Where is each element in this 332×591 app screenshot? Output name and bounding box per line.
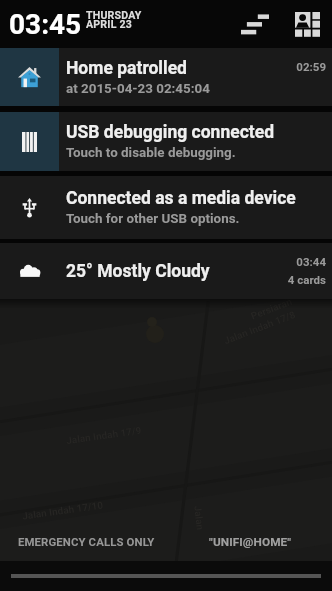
- button[interactable]: USB debugging connected: [0, 112, 332, 171]
- staticText: Touch to disable debugging.: [66, 145, 236, 161]
- staticText: Persiaran: [249, 295, 295, 322]
- staticText: EMERGENCY CALLS ONLY: [18, 535, 155, 548]
- staticText: Touch for other USB options.: [66, 211, 240, 227]
- button[interactable]: Quick settings: [289, 0, 326, 48]
- staticText: APRIL 23: [86, 18, 132, 30]
- button[interactable]: Settings: [232, 0, 278, 48]
- staticText: 03:45: [9, 8, 82, 41]
- staticText: Home patrolled: [66, 58, 187, 79]
- staticText: THURSDAY: [86, 9, 142, 21]
- staticText: 25° Mostly Cloudy: [66, 261, 210, 282]
- staticText: Connected as a media device: [66, 188, 296, 209]
- staticText: USB debugging connected: [66, 122, 275, 143]
- staticText: Jalan Indah 17/10: [22, 499, 104, 523]
- staticText: 4 cards: [287, 273, 326, 286]
- staticText: 03:44: [296, 255, 326, 268]
- staticText: 02:59: [296, 60, 326, 73]
- staticText: at 2015-04-23 02:45:04: [66, 81, 210, 97]
- button[interactable]: Connected as a media device: [0, 176, 332, 239]
- button[interactable]: Home patrolled: [0, 48, 332, 106]
- button[interactable]: 25° Mostly Cloudy: [0, 243, 332, 299]
- staticText: "UNIFI@HOME": [209, 535, 292, 549]
